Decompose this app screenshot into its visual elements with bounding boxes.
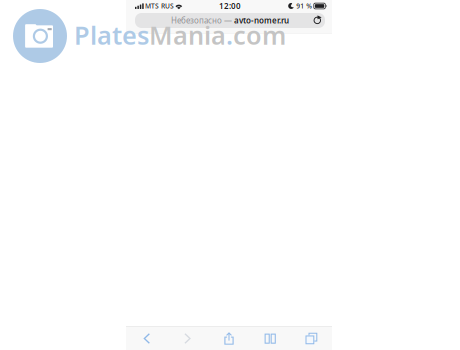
staticText: 91 %	[296, 2, 312, 10]
staticText: avto-nomer.ru	[234, 15, 289, 26]
button[interactable]: Bookmarks	[250, 327, 291, 350]
staticText: MTS RUS	[145, 2, 174, 10]
button[interactable]: Share	[208, 327, 250, 350]
button[interactable]: Forward	[167, 327, 208, 350]
staticText: Mania	[149, 18, 226, 52]
staticText: .	[226, 18, 233, 52]
staticText: Небезопасно —	[171, 15, 232, 26]
staticText: 12:00	[219, 1, 241, 11]
button[interactable]: Tabs	[291, 327, 332, 350]
button[interactable]: Reload	[310, 13, 324, 27]
staticText: Plates	[74, 18, 149, 52]
staticText: com	[233, 18, 286, 52]
button[interactable]: Back	[126, 327, 167, 350]
